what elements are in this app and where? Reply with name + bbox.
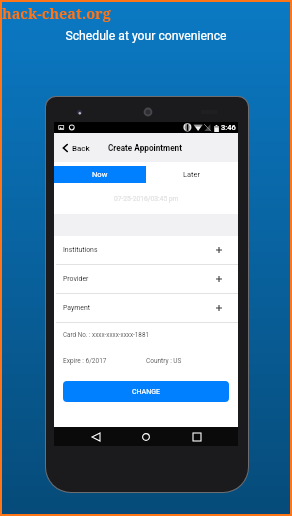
button[interactable]: Back — [54, 137, 96, 159]
staticText: CHANGE — [132, 388, 160, 396]
button[interactable]: Back — [87, 428, 105, 446]
button[interactable]: Payment — [54, 294, 238, 322]
staticText: 07-25-2016/03:45 pm — [114, 195, 179, 203]
staticText: Provider — [63, 275, 89, 283]
staticText: Create Appointment — [108, 143, 182, 153]
staticText: hack-cheat.org — [2, 3, 111, 23]
staticText: Later — [183, 170, 201, 179]
button[interactable]: Home — [137, 428, 155, 446]
staticText: Card No. : xxxx-xxxx-xxxx-1881 — [63, 331, 149, 338]
button[interactable]: Now — [54, 166, 146, 183]
staticText: Country : US — [146, 357, 182, 365]
button[interactable]: CHANGE — [63, 381, 229, 402]
staticText: Payment — [63, 304, 91, 312]
button[interactable]: Provider — [54, 265, 238, 293]
staticText: Schedule at your convenience — [2, 29, 290, 43]
staticText: Institutions — [63, 246, 98, 254]
staticText: 3:46 — [221, 123, 236, 132]
button[interactable]: Recents — [188, 428, 206, 446]
button[interactable]: Institutions — [54, 236, 238, 264]
staticText: Expire : 6/2017 — [63, 357, 107, 365]
staticText: Back — [72, 144, 90, 153]
button[interactable]: Later — [146, 166, 238, 183]
staticText: Now — [92, 170, 108, 179]
